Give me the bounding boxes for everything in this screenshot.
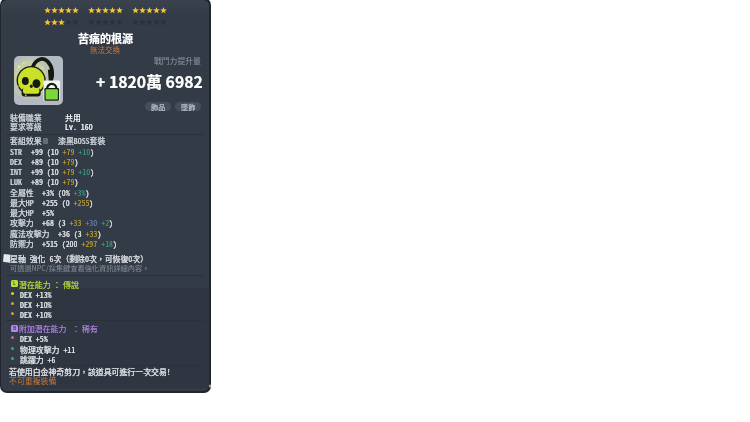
staticText: 套組效果	[10, 135, 42, 146]
staticText: +68 (3 +33 +30 +2)	[42, 217, 114, 228]
staticText: 星軸 強化 6次（剩除0次，可恢復0次）	[10, 253, 149, 264]
staticText: 苦痛的根源	[78, 30, 133, 46]
staticText: +3% (0% +3%)	[42, 187, 90, 198]
staticText: 防禦力	[10, 238, 34, 249]
staticText: 若使用白金神奇剪刀，該道具可進行一次交易!	[9, 366, 171, 377]
staticText: 全屬性	[10, 187, 34, 198]
staticText: +255 (0 +255)	[42, 197, 94, 208]
staticText: 要求等級	[10, 121, 42, 132]
staticText: ：	[53, 279, 61, 290]
staticText: 附加潛在能力	[19, 323, 67, 334]
staticText: +36 (3 +33)	[58, 228, 102, 239]
staticText: DEX +5%	[20, 333, 48, 344]
staticText: INT	[10, 166, 22, 177]
staticText: Lv. 160	[65, 121, 93, 132]
staticText: 攻擊力	[10, 217, 34, 228]
staticText: 物理攻擊力 +11	[20, 344, 76, 355]
staticText: +89 (10 +79)	[31, 156, 79, 167]
button[interactable]: 墜飾	[175, 102, 201, 111]
button[interactable]: Item icon	[14, 56, 63, 105]
staticText: 無法交換	[90, 44, 120, 55]
staticText: DEX	[10, 156, 22, 167]
staticText: 飾品	[151, 102, 166, 111]
staticText: 裝備職業	[10, 112, 42, 123]
staticText: DEX +10%	[20, 299, 52, 310]
staticText: + 1820萬 6982	[96, 70, 203, 93]
button[interactable]: 飾品	[145, 102, 171, 111]
staticText: DEX +13%	[20, 289, 52, 300]
staticText: 跳躍力 +6	[20, 354, 56, 365]
staticText: +99 (10 +79 +10)	[31, 146, 95, 157]
staticText: +89 (10 +79)	[31, 176, 79, 187]
staticText: L	[13, 280, 16, 287]
staticText: 漆黑BOSS套裝	[58, 135, 106, 146]
staticText: 傳說	[63, 279, 79, 290]
staticText: +99 (10 +79 +10)	[31, 166, 95, 177]
staticText: 不可重複裝備	[9, 375, 57, 386]
staticText: 共用	[65, 112, 81, 123]
staticText: B	[13, 325, 17, 332]
staticText: LUK	[10, 176, 22, 187]
staticText: 墜飾	[181, 102, 196, 111]
staticText: 最大HP	[10, 207, 34, 218]
staticText: 最大HP	[10, 197, 34, 208]
staticText: ：	[72, 323, 80, 334]
staticText: +5%	[42, 207, 54, 218]
staticText: DEX +10%	[20, 309, 52, 320]
staticText: 潛在能力	[19, 279, 51, 290]
staticText: 可透過NPC/採集鍵查看強化資訊詳細內容。	[10, 263, 150, 273]
staticText: STR	[10, 146, 22, 157]
staticText: 戰鬥力提升量	[154, 55, 201, 66]
staticText: 稀有	[82, 323, 98, 334]
staticText: +515 (200 +297 +18)	[42, 238, 117, 249]
staticText: 魔法攻擊力	[10, 228, 50, 239]
